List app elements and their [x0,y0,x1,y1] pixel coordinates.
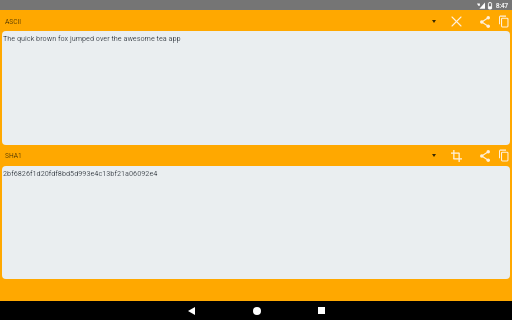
staticText: 2bf6826f1d20fdf8bd5d993e4c13bf21a06092e4 [3,169,158,177]
button[interactable]: More options [419,11,443,32]
button[interactable]: Crop [443,145,469,166]
staticText: 8:47 [496,2,509,9]
button[interactable]: Copy [495,145,512,166]
button[interactable]: Clear [443,11,469,32]
button[interactable]: Share [469,11,495,32]
button[interactable]: Recents [289,301,354,320]
staticText: SHA1 [5,152,22,160]
button[interactable]: Back [159,301,224,320]
button[interactable]: More options [419,145,443,166]
button[interactable]: Share [469,145,495,166]
staticText: The quick brown fox jumped over the awes… [3,34,181,42]
button[interactable]: 2bf6826f1d20fdf8bd5d993e4c13bf21a06092e4 [2,166,510,279]
button[interactable]: Home [224,301,289,320]
button[interactable]: The quick brown fox jumped over the awes… [2,31,510,145]
button[interactable]: Copy [495,11,512,32]
staticText: ASCII [5,18,22,26]
